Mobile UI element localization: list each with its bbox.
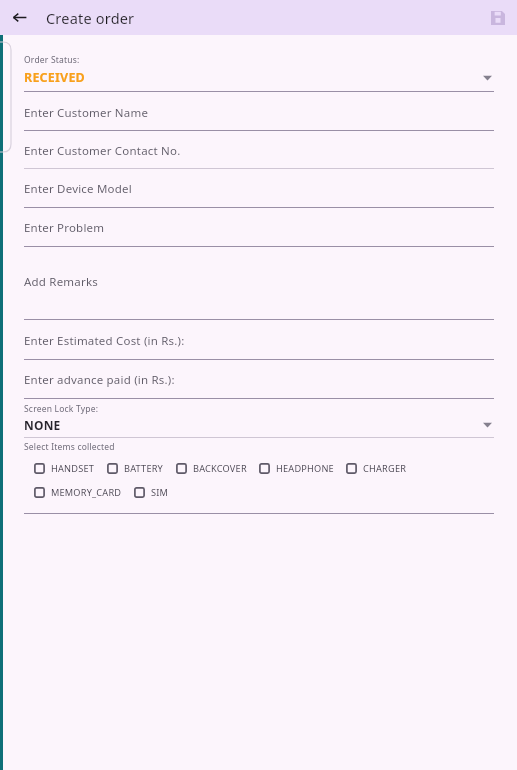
button[interactable]: Enter advance paid (in Rs.):: [0, 360, 517, 399]
staticText: CHARGER: [363, 462, 407, 475]
button[interactable]: MEMORY_CARD: [34, 486, 122, 499]
button[interactable]: Add Remarks: [0, 247, 517, 320]
staticText: BACKCOVER: [193, 462, 247, 475]
button[interactable]: Enter Customer Name: [0, 92, 517, 131]
button[interactable]: Save: [485, 5, 511, 31]
staticText: HANDSET: [51, 462, 95, 475]
button[interactable]: Back: [7, 5, 32, 30]
staticText: Screen Lock Type:: [24, 403, 99, 415]
staticText: NONE: [24, 417, 61, 433]
button[interactable]: HANDSET: [34, 462, 95, 475]
staticText: Enter advance paid (in Rs.):: [24, 372, 175, 388]
staticText: Create order: [46, 8, 135, 28]
staticText: Enter Estimated Cost (in Rs.):: [24, 333, 185, 349]
staticText: RECEIVED: [24, 69, 85, 86]
staticText: HEADPHONE: [276, 462, 334, 475]
staticText: Enter Device Model: [24, 181, 132, 197]
button[interactable]: Enter Estimated Cost (in Rs.):: [0, 320, 517, 360]
staticText: Add Remarks: [24, 274, 98, 290]
staticText: Select Items collected: [24, 441, 115, 453]
staticText: SIM: [151, 486, 169, 499]
staticText: Enter Customer Contact No.: [24, 143, 181, 159]
button[interactable]: BACKCOVER: [176, 462, 247, 475]
button[interactable]: Screen Lock Type:: [0, 399, 517, 438]
button[interactable]: Enter Customer Contact No.: [0, 131, 517, 169]
staticText: MEMORY_CARD: [51, 486, 122, 499]
button[interactable]: BATTERY: [107, 462, 164, 475]
button[interactable]: Enter Problem: [0, 208, 517, 247]
staticText: Order Status:: [24, 54, 80, 66]
button[interactable]: CHARGER: [346, 462, 407, 475]
staticText: Enter Customer Name: [24, 105, 149, 121]
staticText: Enter Problem: [24, 220, 105, 236]
button[interactable]: Order Status:: [0, 54, 517, 92]
button[interactable]: SIM: [134, 486, 169, 499]
staticText: BATTERY: [124, 462, 164, 475]
button[interactable]: Enter Device Model: [0, 169, 517, 208]
button[interactable]: HEADPHONE: [259, 462, 334, 475]
